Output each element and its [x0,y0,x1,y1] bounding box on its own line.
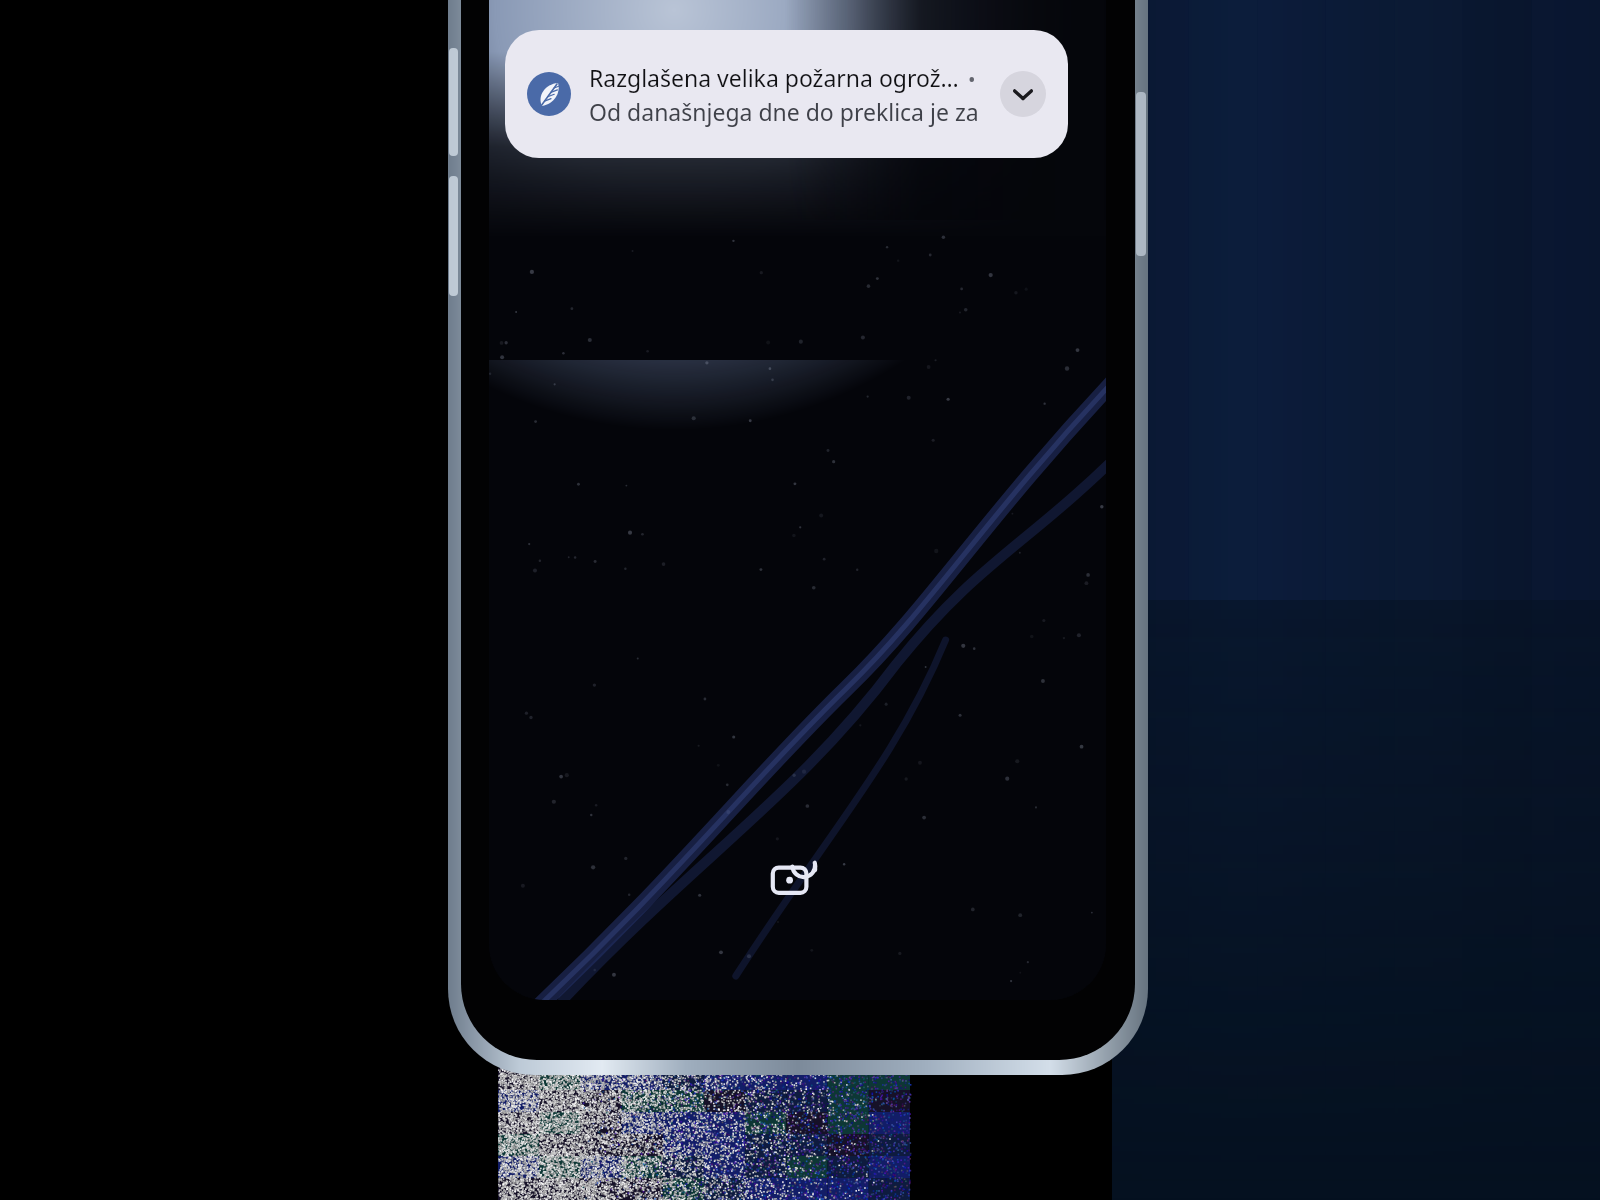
button[interactable]: Razglašena velika požarna ogrož… [505,30,1068,158]
button[interactable]: Unlock [763,835,833,905]
staticText: Od današnjega dne do preklica je za Ob… [589,96,990,127]
staticText: Razglašena velika požarna ogrož… [589,62,959,93]
button[interactable]: Expand notification [1000,71,1046,117]
staticText: • now [968,66,990,93]
